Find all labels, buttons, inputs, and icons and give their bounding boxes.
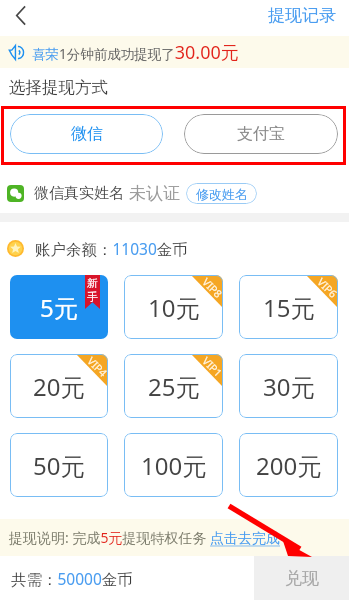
staticText: VIP1 <box>199 354 223 380</box>
button[interactable]: 修改姓名 <box>186 183 257 204</box>
staticText: 手 <box>87 290 98 304</box>
staticText: VIP6 <box>314 275 338 301</box>
staticText: 提现说明: 完成5元提现特权任务 点击去完成 <box>9 528 281 547</box>
button[interactable]: 20元 <box>10 354 108 418</box>
staticText: 喜荣1分钟前成功提现了30.00元 <box>32 40 239 65</box>
button[interactable]: 支付宝 <box>184 114 338 154</box>
staticText: 支付宝 <box>237 124 285 144</box>
staticText: 选择提现方式 <box>9 77 108 98</box>
staticText: 新 <box>87 276 98 290</box>
staticText: 账户余额：11030金币 <box>35 238 188 259</box>
staticText: 20元 <box>33 370 85 403</box>
staticText: 提现记录 <box>268 5 336 26</box>
button[interactable]: 微信 <box>10 114 163 154</box>
button[interactable]: 15元 <box>239 275 338 339</box>
button[interactable]: 30元 <box>239 354 338 418</box>
button[interactable]: 100元 <box>124 433 223 497</box>
staticText: 200元 <box>256 449 322 482</box>
staticText: VIP8 <box>199 275 223 301</box>
staticText: 50元 <box>33 449 85 482</box>
button[interactable]: 200元 <box>239 433 338 497</box>
staticText: 修改姓名 <box>196 186 248 202</box>
button[interactable]: 提现记录 <box>268 5 349 26</box>
staticText: 微信真实姓名 <box>34 184 124 203</box>
button[interactable]: Back <box>7 2 33 28</box>
button[interactable]: 5元 <box>10 275 108 339</box>
staticText: 15元 <box>263 291 315 324</box>
staticText: 10元 <box>148 291 200 324</box>
button[interactable]: 50元 <box>10 433 108 497</box>
staticText: 微信 <box>71 124 103 144</box>
button[interactable]: 10元 <box>124 275 223 339</box>
staticText: 未认证 <box>129 183 180 204</box>
button[interactable]: 兑现 <box>254 556 349 600</box>
staticText: VIP4 <box>84 354 108 380</box>
staticText: 100元 <box>141 449 207 482</box>
staticText: 25元 <box>148 370 200 403</box>
staticText: 共需：50000金币 <box>11 568 133 589</box>
staticText: 5元 <box>40 291 78 324</box>
staticText: 30元 <box>263 370 315 403</box>
button[interactable]: 25元 <box>124 354 223 418</box>
staticText: 兑现 <box>285 568 319 589</box>
